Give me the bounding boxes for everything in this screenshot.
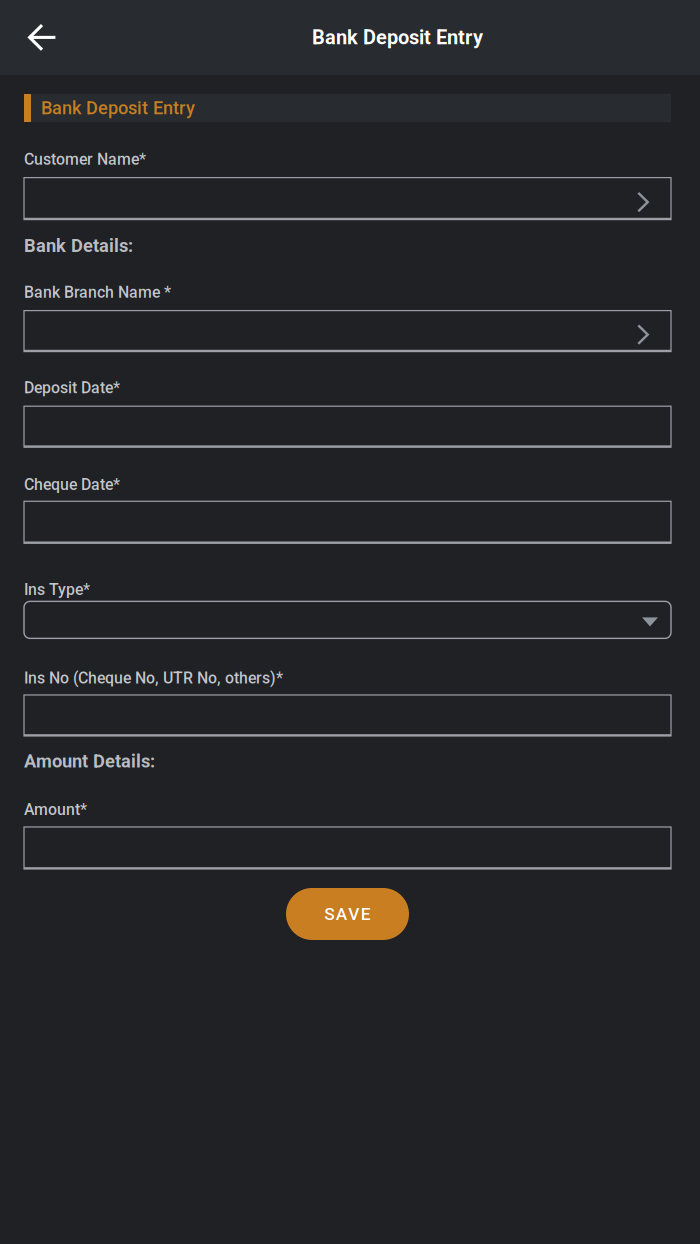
button[interactable]: SAVE bbox=[286, 888, 409, 940]
staticText: Bank Deposit Entry bbox=[41, 97, 195, 119]
staticText: Customer Name* bbox=[24, 150, 146, 169]
button[interactable] bbox=[24, 178, 671, 220]
staticText: Deposit Date* bbox=[24, 379, 120, 397]
staticText: Ins No (Cheque No, UTR No, others)* bbox=[24, 669, 283, 687]
staticText: Bank Branch Name * bbox=[24, 283, 171, 302]
staticText: Cheque Date* bbox=[24, 475, 120, 494]
button[interactable] bbox=[24, 695, 671, 736]
staticText: Amount Details: bbox=[24, 750, 155, 772]
button[interactable]: Back bbox=[15, 10, 69, 64]
button[interactable] bbox=[24, 601, 671, 638]
button[interactable] bbox=[24, 827, 671, 869]
staticText: SAVE bbox=[324, 904, 371, 924]
staticText: Ins Type* bbox=[24, 580, 90, 599]
staticText: Amount* bbox=[24, 800, 87, 819]
staticText: Bank Details: bbox=[24, 235, 133, 256]
staticText: Bank Deposit Entry bbox=[312, 26, 483, 49]
button[interactable] bbox=[24, 311, 671, 352]
button[interactable] bbox=[24, 501, 671, 543]
button[interactable] bbox=[24, 406, 671, 447]
